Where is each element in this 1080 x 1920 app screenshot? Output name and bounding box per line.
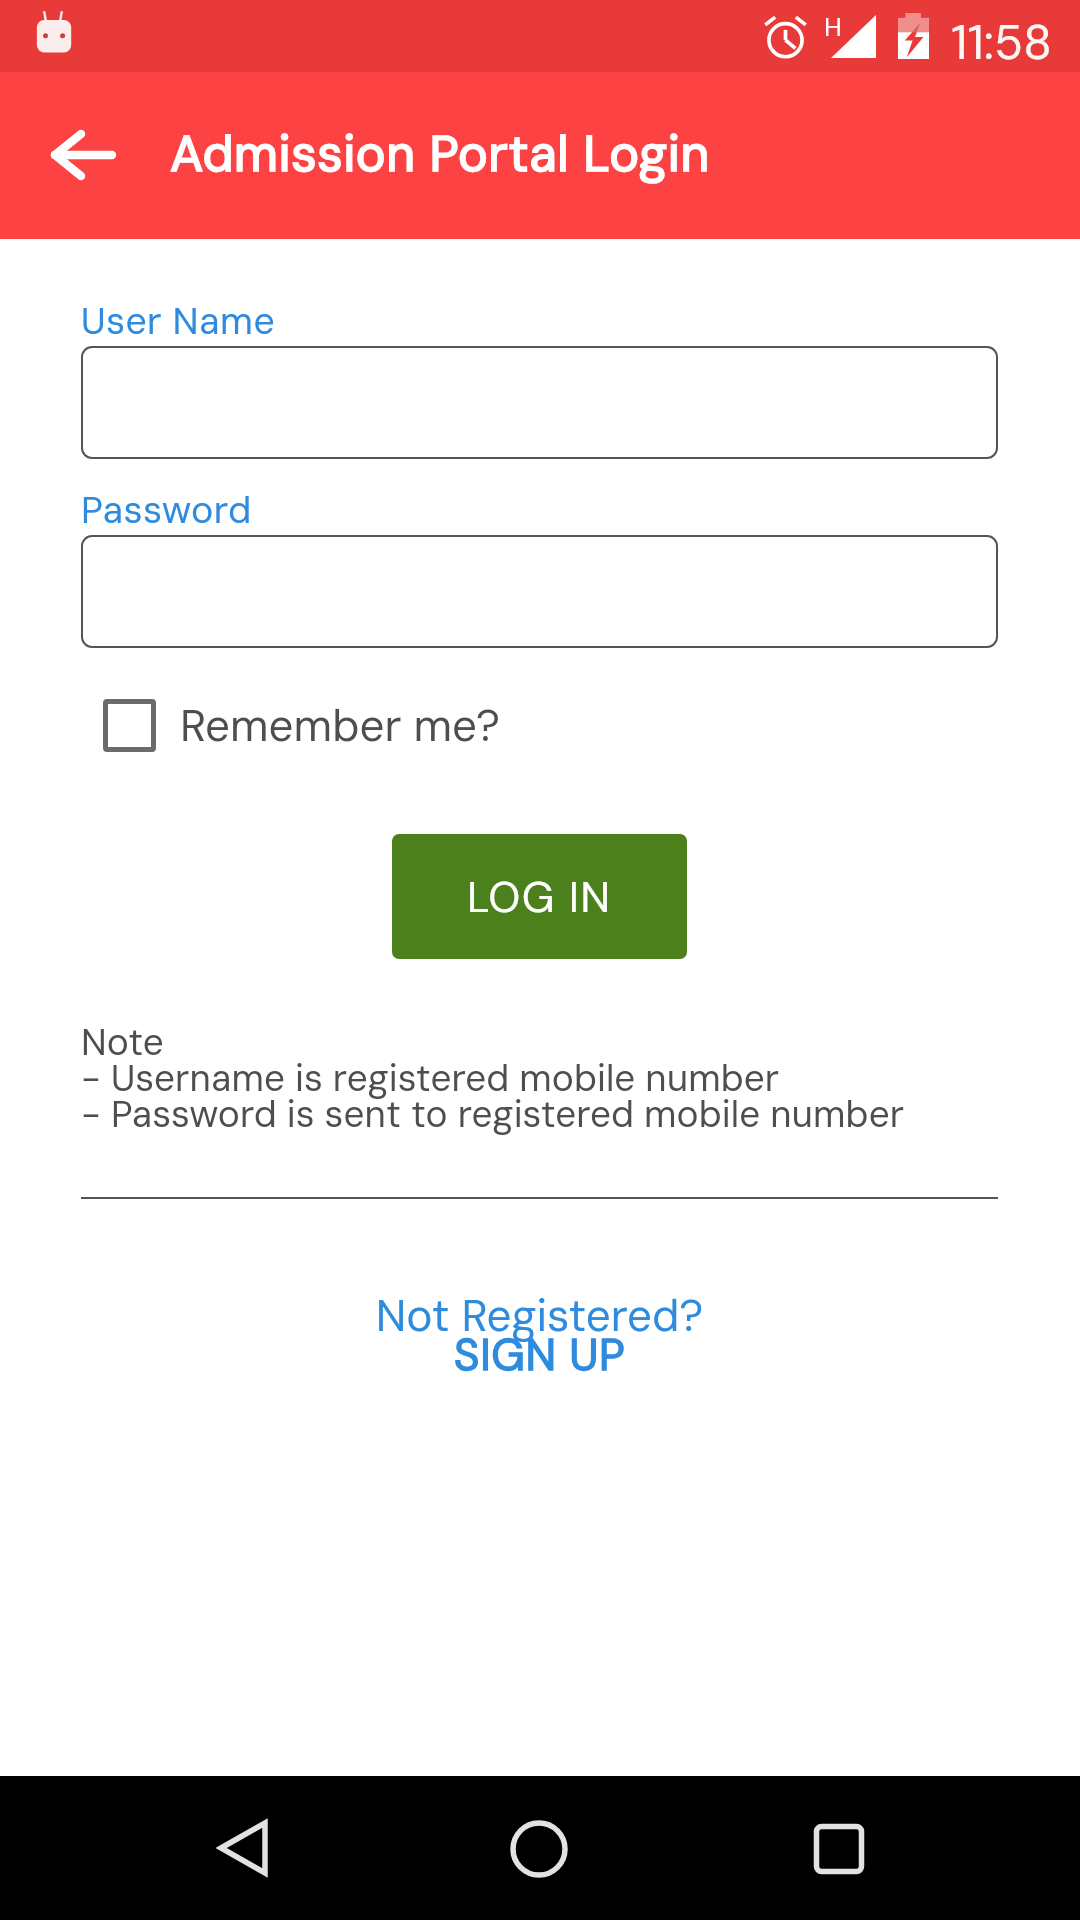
staticText: User Name (81, 297, 276, 346)
button[interactable]: Back (192, 1797, 294, 1899)
staticText: Admission Portal Login (170, 121, 710, 186)
staticText: Not Registered? SIGN UP (81, 1287, 998, 1384)
staticText: LOG IN (467, 869, 612, 925)
staticText: Password (81, 486, 252, 535)
staticText: H (824, 10, 842, 44)
button[interactable]: Not Registered? SIGN UP (81, 1287, 998, 1384)
button[interactable]: Remember me? (103, 697, 501, 754)
button[interactable]: LOG IN (392, 834, 687, 959)
button[interactable]: Text field (81, 535, 998, 648)
staticText: Note - Username is registered mobile num… (81, 1018, 905, 1138)
button[interactable]: Text field (81, 346, 998, 459)
staticText: 11:58 (951, 11, 1052, 73)
button[interactable]: Navigate up (36, 108, 130, 202)
staticText: Remember me? (180, 697, 501, 754)
button[interactable]: Recent apps (788, 1798, 890, 1900)
button[interactable]: Home (488, 1798, 590, 1900)
